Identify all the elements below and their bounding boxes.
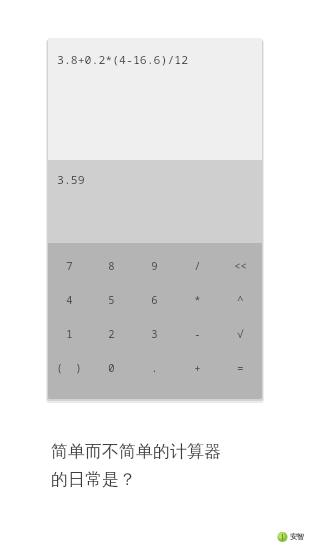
staticText: .	[151, 361, 158, 375]
button[interactable]: 7	[48, 249, 90, 283]
button[interactable]: ^	[219, 283, 262, 317]
staticText: +	[194, 361, 201, 375]
button[interactable]: *	[176, 283, 219, 317]
staticText: <<	[234, 259, 247, 273]
button[interactable]: 2	[90, 317, 133, 351]
staticText: /	[194, 259, 201, 273]
staticText: 9	[151, 259, 158, 273]
staticText: =	[237, 361, 244, 375]
button[interactable]: 0	[90, 351, 133, 385]
button[interactable]: 8	[90, 249, 133, 283]
button[interactable]: 1	[48, 317, 90, 351]
button[interactable]: 4	[48, 283, 90, 317]
button[interactable]: ( )	[48, 351, 90, 385]
staticText: 6	[151, 293, 158, 307]
button[interactable]: 5	[90, 283, 133, 317]
staticText: 的日常是？	[51, 469, 136, 490]
staticText: 1	[66, 327, 73, 341]
staticText: ( )	[56, 361, 82, 375]
staticText: *	[194, 293, 201, 307]
button[interactable]: 3	[133, 317, 176, 351]
staticText: √	[237, 327, 244, 341]
staticText: 安智	[290, 532, 304, 541]
button[interactable]: =	[219, 351, 262, 385]
staticText: 4	[66, 293, 73, 307]
staticText: 2	[108, 327, 115, 341]
staticText: 简单而不简单的计算器	[51, 441, 221, 462]
staticText: 8	[108, 259, 115, 273]
button[interactable]: /	[176, 249, 219, 283]
button[interactable]: 9	[133, 249, 176, 283]
staticText: 5	[108, 293, 115, 307]
button[interactable]: -	[176, 317, 219, 351]
staticText: 7	[66, 259, 73, 273]
button[interactable]: <<	[219, 249, 262, 283]
button[interactable]: +	[176, 351, 219, 385]
staticText: -	[194, 327, 201, 341]
button[interactable]: √	[219, 317, 262, 351]
staticText: 0	[108, 361, 115, 375]
staticText: 3	[151, 327, 158, 341]
staticText: ^	[237, 293, 244, 307]
staticText: 3.59	[57, 172, 85, 188]
staticText: 3.8+0.2*(4-16.6)/12	[57, 52, 189, 68]
button[interactable]: 6	[133, 283, 176, 317]
button[interactable]: 安智市场	[275, 529, 306, 544]
